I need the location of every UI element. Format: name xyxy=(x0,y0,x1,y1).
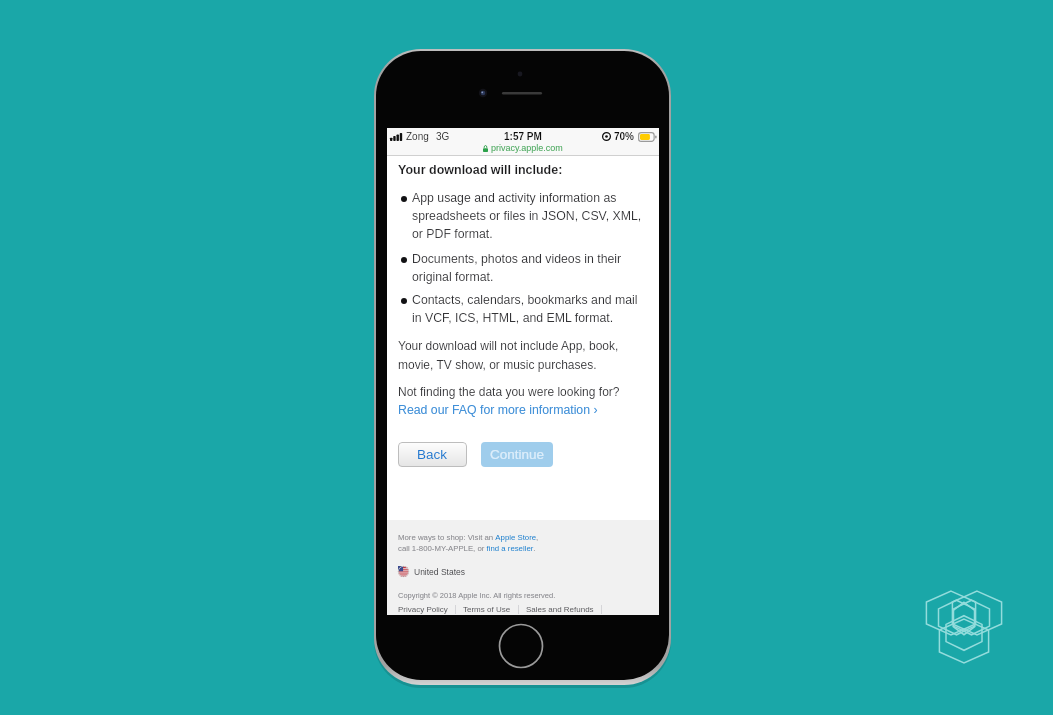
staticText: Your download will include: xyxy=(398,163,563,177)
button[interactable]: Privacy Policy xyxy=(398,605,448,614)
staticText: More ways to shop: Visit an Apple Store,… xyxy=(398,533,539,552)
staticText: United States xyxy=(414,567,466,576)
button[interactable]: privacy.apple.com xyxy=(387,142,659,153)
staticText: Privacy Policy xyxy=(398,605,448,614)
staticText: Your download will not include App, book… xyxy=(398,339,648,372)
button[interactable]: Terms of Use xyxy=(463,605,511,614)
staticText: Zong xyxy=(406,131,429,142)
staticText: 3G xyxy=(436,131,450,142)
staticText: Terms of Use xyxy=(463,605,511,614)
staticText: Copyright © 2018 Apple Inc. All rights r… xyxy=(398,591,556,599)
staticText: Contacts, calendars, bookmarks and mail … xyxy=(412,293,644,325)
staticText: Sales and Refunds xyxy=(526,605,594,614)
staticText: 70% xyxy=(614,131,635,142)
staticText: Not finding the data you were looking fo… xyxy=(398,385,620,398)
staticText: Documents, photos and videos in their or… xyxy=(412,252,644,284)
staticText: privacy.apple.com xyxy=(491,143,563,153)
staticText: Back xyxy=(417,447,448,462)
button[interactable]: Sales and Refunds xyxy=(526,605,594,614)
staticText: Continue xyxy=(490,447,545,462)
button[interactable]: United States xyxy=(398,566,466,577)
button[interactable]: Home xyxy=(500,625,543,668)
button[interactable]: Back xyxy=(398,442,467,467)
button[interactable]: Read our FAQ for more information › xyxy=(398,403,598,417)
staticText: Read our FAQ for more information › xyxy=(398,403,598,417)
staticText: App usage and activity information as sp… xyxy=(412,191,644,241)
button[interactable]: Continue xyxy=(481,442,553,467)
staticText: 1:57 PM xyxy=(504,131,542,142)
